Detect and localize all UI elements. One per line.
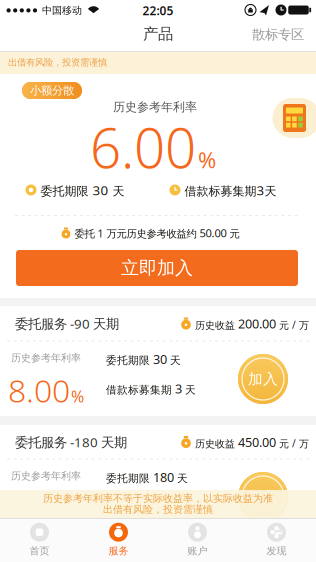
- staticText: 出借有风险，投资需谨慎: [103, 503, 213, 516]
- staticText: 中国移动: [42, 4, 82, 17]
- button[interactable]: 首页: [0, 518, 79, 562]
- staticText: 产品: [143, 24, 173, 44]
- staticText: 历史收益 200.00 元 / 万: [195, 315, 309, 332]
- staticText: 历史参考年利率: [113, 99, 197, 114]
- staticText: 22:05: [142, 2, 173, 19]
- staticText: 发现: [266, 545, 286, 557]
- button[interactable]: 加入: [238, 472, 288, 522]
- staticText: 首页: [29, 545, 49, 557]
- staticText: 散标专区: [252, 26, 304, 43]
- staticText: 加入: [248, 488, 278, 506]
- staticText: 历史参考年利率: [11, 470, 81, 482]
- staticText: 借款标募集期3天: [184, 181, 276, 199]
- staticText: 历史收益 450.00 元 / 万: [195, 434, 309, 450]
- button[interactable]: 计算器: [272, 98, 316, 138]
- button[interactable]: 加入: [238, 354, 288, 404]
- button[interactable]: 服务: [79, 518, 158, 562]
- staticText: 小额分散: [30, 83, 74, 98]
- staticText: 借款标募集期 3 天: [106, 380, 196, 397]
- staticText: 委托期限 180 天: [106, 469, 188, 485]
- staticText: 委托服务 -90 天期: [15, 314, 119, 333]
- staticText: 8.00: [8, 368, 70, 412]
- staticText: 出借有风险，投资需谨慎: [8, 57, 107, 68]
- staticText: 委托期限 30 天: [106, 351, 181, 367]
- staticText: 委托服务 -180 天期: [15, 433, 127, 451]
- staticText: 委托 1 万元历史参考收益约 50.00 元: [74, 226, 239, 240]
- staticText: 历史参考年利率不等于实际收益率，以实际收益为准: [43, 492, 273, 505]
- staticText: %: [198, 145, 216, 175]
- button[interactable]: 立即加入: [16, 250, 298, 286]
- button[interactable]: 散标专区: [252, 26, 304, 43]
- staticText: 历史参考年利率: [11, 352, 81, 364]
- staticText: 6.00: [90, 110, 196, 184]
- button[interactable]: 发现: [237, 518, 316, 562]
- staticText: 委托期限 30 天: [40, 181, 124, 199]
- staticText: 账户: [187, 545, 207, 557]
- staticText: %: [71, 385, 84, 407]
- button[interactable]: 账户: [158, 518, 237, 562]
- staticText: 加入: [248, 370, 278, 388]
- staticText: 立即加入: [121, 257, 193, 279]
- staticText: 服务: [108, 545, 128, 557]
